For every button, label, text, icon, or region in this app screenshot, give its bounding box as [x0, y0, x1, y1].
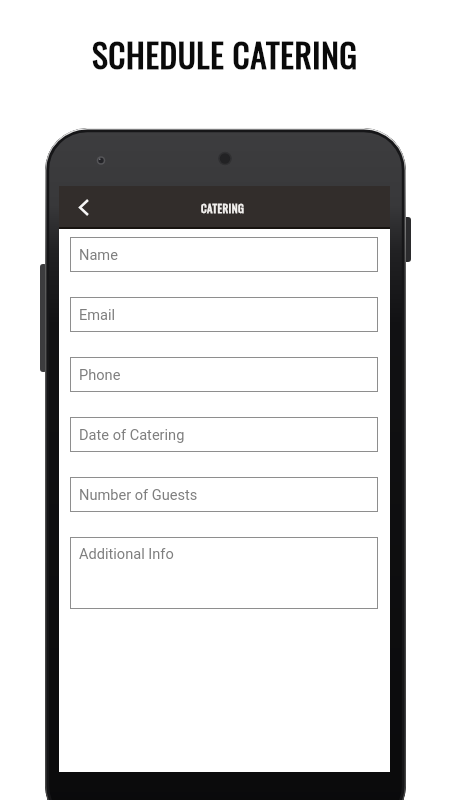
staticText: Additional Info [79, 545, 174, 562]
button[interactable] [69, 191, 99, 224]
button[interactable]: Phone [70, 357, 378, 392]
button[interactable]: Email [70, 297, 378, 332]
staticText: SCHEDULE CATERING [92, 29, 358, 78]
staticText: Phone [79, 366, 121, 383]
button[interactable]: Name [70, 237, 378, 272]
staticText: Name [79, 246, 118, 263]
staticText: Number of Guests [79, 486, 198, 503]
staticText: CATERING [201, 200, 245, 216]
staticText: Email [79, 306, 116, 323]
staticText: Date of Catering [79, 426, 185, 443]
button[interactable]: Date of Catering [70, 417, 378, 452]
button[interactable]: Additional Info [70, 537, 378, 609]
button[interactable]: Number of Guests [70, 477, 378, 512]
